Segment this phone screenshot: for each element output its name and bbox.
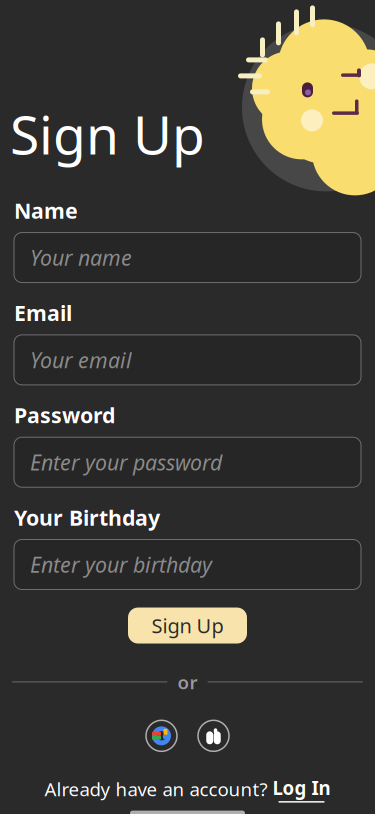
button[interactable]: Sign up with Google — [146, 720, 177, 751]
button[interactable]: Your email — [14, 335, 361, 385]
button[interactable]: Enter your birthday — [14, 539, 361, 589]
staticText: Sign Up — [151, 612, 223, 639]
staticText: Your Birthday — [14, 503, 160, 531]
staticText: Email — [14, 298, 72, 327]
button[interactable]: Your name — [14, 232, 361, 282]
staticText: Log In — [272, 775, 330, 800]
staticText: Sign Up — [10, 98, 205, 169]
staticText: Name — [14, 196, 78, 224]
staticText: Password — [14, 401, 115, 429]
button[interactable]: Sign up with Apple — [198, 720, 229, 751]
staticText: Enter your birthday — [30, 550, 212, 579]
staticText: Already have an account? — [44, 777, 267, 801]
staticText: Your name — [30, 243, 132, 272]
button[interactable]: Sign Up — [128, 607, 247, 643]
button[interactable]: Already have an account? — [44, 775, 330, 803]
button[interactable]: Enter your password — [14, 437, 361, 487]
staticText: or — [177, 669, 197, 694]
staticText: Your email — [30, 346, 132, 374]
staticText: Enter your password — [30, 448, 222, 476]
